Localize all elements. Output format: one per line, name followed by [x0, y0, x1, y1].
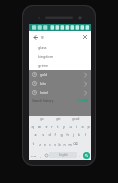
button[interactable]: f — [52, 130, 58, 138]
staticText: l — [85, 132, 86, 137]
staticText: Search history — [32, 99, 54, 103]
button[interactable]: z — [37, 138, 42, 150]
button[interactable]: w — [36, 122, 43, 130]
button[interactable]: Search — [82, 151, 90, 159]
button[interactable]: s — [39, 130, 46, 138]
staticText: bite — [40, 81, 47, 86]
staticText: w — [38, 124, 41, 129]
staticText: hotel — [40, 90, 49, 95]
staticText: b — [58, 142, 61, 147]
button[interactable]: h — [64, 130, 70, 138]
staticText: j — [73, 132, 74, 137]
button[interactable]: r — [49, 122, 55, 130]
staticText: ⇧ — [32, 142, 35, 146]
button[interactable]: a — [32, 130, 39, 138]
button[interactable]: Period — [77, 152, 82, 159]
staticText: f — [54, 132, 56, 137]
button[interactable]: bite — [29, 79, 91, 88]
staticText: glass — [38, 45, 47, 50]
staticText: c — [49, 142, 51, 147]
button[interactable]: t — [55, 122, 61, 130]
staticText: v — [54, 142, 56, 147]
button[interactable]: kingdom — [29, 52, 91, 61]
staticText: grime — [38, 63, 49, 68]
staticText: x — [44, 142, 46, 147]
button[interactable]: n — [62, 138, 67, 150]
staticText: a — [34, 132, 37, 137]
button[interactable]: Emoji — [43, 152, 49, 159]
button[interactable]: CLEAR — [78, 99, 88, 103]
button[interactable]: good — [72, 117, 80, 121]
button[interactable]: v — [52, 138, 57, 150]
staticText: . — [79, 154, 80, 158]
button[interactable]: c — [47, 138, 52, 150]
staticText: , — [40, 154, 41, 158]
staticText: y — [63, 124, 65, 129]
button[interactable]: p — [85, 122, 91, 130]
button[interactable]: grime — [29, 61, 91, 70]
button[interactable]: glass — [29, 43, 91, 52]
button[interactable]: hotel — [29, 88, 91, 97]
staticText: good — [72, 117, 80, 121]
staticText: p — [87, 124, 90, 129]
staticText: h — [66, 132, 69, 137]
button[interactable]: Comma — [38, 152, 43, 159]
staticText: o — [81, 124, 84, 129]
button[interactable]: d — [46, 130, 52, 138]
staticText: t — [57, 124, 59, 129]
staticText: e — [45, 124, 48, 129]
button[interactable]: go — [40, 117, 44, 121]
staticText: m — [68, 142, 72, 147]
staticText: CLEAR — [78, 99, 88, 103]
button[interactable]: j — [70, 130, 76, 138]
button[interactable]: k — [76, 130, 82, 138]
button[interactable]: ⌫ — [72, 138, 79, 150]
staticText: g — [60, 132, 63, 137]
button[interactable]: o — [79, 122, 85, 130]
button[interactable]: Clear query — [81, 33, 89, 41]
staticText: k — [78, 132, 80, 137]
staticText: z — [39, 142, 41, 147]
staticText: r — [51, 124, 53, 129]
button[interactable]: English — [49, 152, 77, 158]
button[interactable]: ?123 — [30, 152, 38, 159]
staticText: s — [42, 132, 44, 137]
staticText: i — [76, 124, 77, 129]
button[interactable]: b — [57, 138, 62, 150]
button[interactable]: i — [73, 122, 79, 130]
button[interactable]: g — [58, 130, 64, 138]
button[interactable]: Back — [31, 33, 39, 41]
button[interactable]: x — [42, 138, 47, 150]
staticText: kingdom — [38, 54, 54, 59]
button[interactable]: m — [67, 138, 72, 150]
staticText: get — [56, 117, 61, 121]
staticText: go — [40, 117, 44, 121]
button[interactable]: e — [43, 122, 49, 130]
button[interactable]: gold — [29, 70, 91, 79]
staticText: u — [69, 124, 72, 129]
staticText: English — [59, 153, 68, 157]
button[interactable]: get — [56, 117, 61, 121]
staticText: n — [63, 142, 66, 147]
button[interactable]: l — [82, 130, 88, 138]
staticText: ⌫ — [73, 142, 78, 146]
button[interactable]: u — [67, 122, 73, 130]
button[interactable]: y — [61, 122, 67, 130]
staticText: g — [41, 34, 44, 40]
button[interactable]: ⇧ — [30, 138, 37, 150]
button[interactable]: q — [29, 122, 36, 130]
staticText: d — [48, 132, 51, 137]
staticText: q — [31, 124, 34, 129]
staticText: ?123 — [31, 154, 37, 157]
staticText: gold — [40, 72, 48, 77]
